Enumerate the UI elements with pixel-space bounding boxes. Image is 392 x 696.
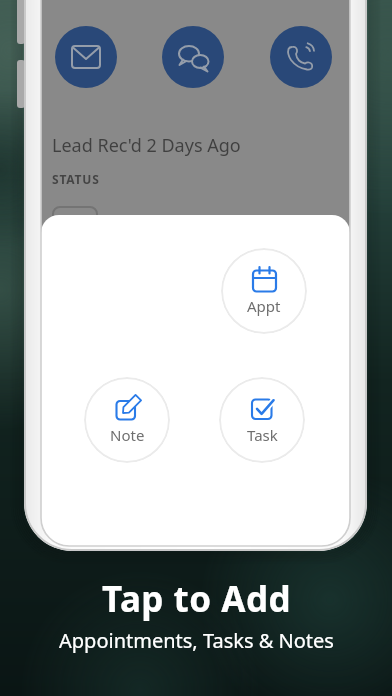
staticText: Appointments, Tasks & Notes [59,627,334,654]
staticText: Lead Rec'd 2 Days Ago [52,133,241,158]
staticText: Appt [247,296,281,316]
staticText: Task [247,425,278,445]
button[interactable]: Note [84,377,170,463]
staticText: Tap to Add [102,575,292,623]
button[interactable]: Task [219,377,305,463]
button[interactable]: Appt [221,248,307,334]
staticText: Note [110,425,145,445]
staticText: STATUS [52,171,100,187]
